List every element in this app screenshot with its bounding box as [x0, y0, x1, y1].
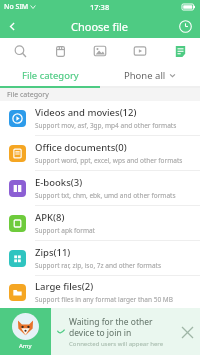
button[interactable]: Files — [160, 38, 200, 64]
button[interactable]: Apps — [40, 38, 80, 64]
button[interactable]: Zips(11) — [0, 241, 200, 275]
staticText: Videos and movies(12) — [35, 106, 137, 119]
button[interactable]: Photos — [80, 38, 120, 64]
staticText: 17:38 — [90, 2, 110, 12]
button[interactable]: Videos and movies(12) — [0, 101, 200, 135]
staticText: E-books(3) — [35, 176, 83, 189]
button[interactable]: History — [174, 15, 196, 37]
button[interactable]: Phone all — [100, 64, 200, 86]
staticText: Support txt, chm, ebk, umd and other for… — [35, 191, 176, 200]
button[interactable]: Office documents(0) — [0, 136, 200, 170]
staticText: No SIM — [4, 2, 29, 12]
button[interactable]: E-books(3) — [0, 171, 200, 205]
button[interactable]: Search — [0, 38, 40, 64]
staticText: APK(8) — [35, 211, 65, 224]
staticText: File category — [22, 69, 79, 82]
staticText: Large files(2) — [35, 280, 94, 293]
button[interactable]: Videos — [120, 38, 160, 64]
staticText: Waiting for the other device to join in — [69, 316, 174, 338]
button[interactable]: Large files(2) — [0, 276, 200, 308]
button[interactable]: APK(8) — [0, 206, 200, 240]
staticText: File category — [7, 90, 49, 100]
staticText: Support files in any format larger than … — [35, 295, 173, 304]
staticText: Support apk format — [35, 226, 95, 235]
staticText: Amy — [19, 342, 32, 350]
button[interactable]: Close — [174, 319, 200, 345]
staticText: Office documents(0) — [35, 141, 127, 154]
staticText: Support rar, zip, iso, 7z and other form… — [35, 261, 162, 270]
button[interactable]: Back — [0, 14, 24, 38]
button[interactable]: Amy avatar — [0, 308, 51, 355]
staticText: Choose file — [71, 19, 129, 34]
staticText: Support word, ppt, excel, wps and other … — [35, 156, 183, 165]
staticText: Support mov, asf, 3gp, mp4 and other for… — [35, 121, 177, 130]
staticText: Zips(11) — [35, 246, 71, 259]
staticText: Connected users will appear here — [69, 340, 164, 348]
staticText: Phone all — [124, 69, 166, 82]
button[interactable]: File category — [0, 64, 100, 86]
